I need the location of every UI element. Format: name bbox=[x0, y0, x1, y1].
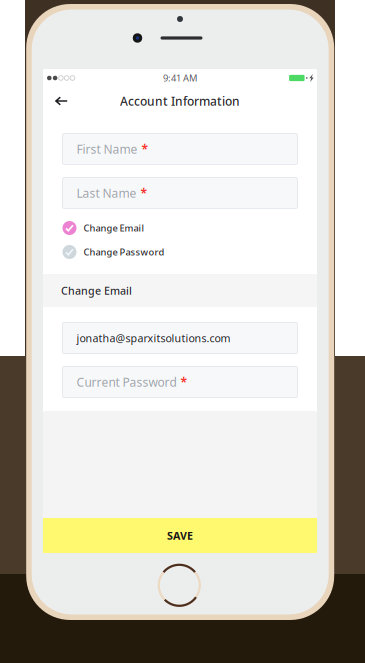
staticText: Change Password bbox=[83, 246, 164, 258]
button[interactable]: Change Password bbox=[62, 243, 297, 260]
staticText: Last Name bbox=[76, 185, 136, 201]
button[interactable]: First Name bbox=[62, 133, 297, 164]
staticText: Change Email bbox=[61, 283, 132, 298]
staticText: * bbox=[180, 374, 187, 390]
staticText: Current Password bbox=[76, 374, 176, 390]
button[interactable]: Current Password bbox=[62, 366, 297, 397]
staticText: Change Email bbox=[83, 222, 144, 234]
button[interactable]: Back bbox=[43, 87, 80, 115]
staticText: SAVE bbox=[167, 528, 193, 543]
staticText: jonatha@sparxitsolutions.com bbox=[76, 331, 230, 345]
staticText: * bbox=[141, 141, 148, 157]
button[interactable]: Change Email bbox=[62, 219, 297, 236]
button[interactable]: jonatha@sparxitsolutions.com bbox=[62, 322, 297, 353]
staticText: Account Information bbox=[120, 93, 240, 109]
staticText: 9:41 AM bbox=[163, 72, 197, 84]
button[interactable]: SAVE bbox=[43, 518, 317, 553]
staticText: First Name bbox=[76, 141, 137, 157]
staticText: * bbox=[140, 185, 147, 201]
button[interactable]: Last Name bbox=[62, 177, 297, 208]
